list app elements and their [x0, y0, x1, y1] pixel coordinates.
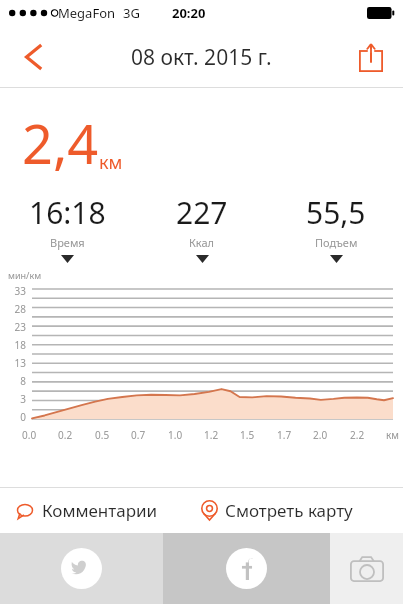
button[interactable]: 55,5 — [269, 192, 403, 263]
staticText: 23 — [0, 320, 26, 334]
staticText: Смотреть карту — [225, 499, 353, 522]
staticText: 13 — [0, 356, 26, 370]
staticText: 08 окт. 2015 г. — [131, 43, 272, 72]
staticText: 1.5 — [240, 428, 255, 442]
staticText: 0.7 — [131, 428, 146, 442]
staticText: 1.0 — [168, 428, 183, 442]
button[interactable]: Смотреть карту — [201, 488, 403, 533]
staticText: 2.0 — [313, 428, 328, 442]
staticText: 20:20 — [172, 4, 206, 22]
button[interactable]: Комментарии — [0, 488, 201, 533]
button[interactable]: Share on Twitter — [0, 533, 163, 604]
staticText: MegaFon — [58, 4, 116, 22]
button[interactable]: 227 — [135, 192, 269, 263]
staticText: 18 — [0, 338, 26, 352]
staticText: 16:18 — [29, 192, 106, 233]
staticText: Комментарии — [42, 499, 158, 522]
staticText: км — [99, 150, 123, 175]
button[interactable]: Back — [10, 35, 54, 79]
button[interactable]: 16:18 — [0, 192, 135, 263]
staticText: 0.0 — [22, 428, 37, 442]
staticText: 0 — [0, 410, 26, 424]
button[interactable]: Take photo — [330, 533, 403, 604]
button[interactable]: Share — [349, 35, 393, 79]
staticText: Ккал — [189, 235, 215, 250]
staticText: 28 — [0, 302, 26, 316]
staticText: 8 — [0, 374, 26, 388]
staticText: 3G — [123, 4, 140, 22]
staticText: 0.2 — [58, 428, 73, 442]
staticText: 2,4 — [22, 106, 99, 180]
button[interactable]: Share on Facebook — [163, 533, 330, 604]
staticText: 55,5 — [306, 192, 366, 233]
staticText: 1.7 — [277, 428, 292, 442]
staticText: Подъем — [315, 235, 358, 250]
staticText: мин/км — [8, 269, 42, 281]
staticText: 33 — [0, 284, 26, 298]
staticText: 1.2 — [204, 428, 219, 442]
staticText: 227 — [176, 192, 228, 233]
staticText: км — [386, 428, 399, 442]
staticText: 2.2 — [350, 428, 365, 442]
staticText: 0.5 — [95, 428, 110, 442]
staticText: Время — [50, 235, 85, 250]
staticText: 3 — [0, 392, 26, 406]
